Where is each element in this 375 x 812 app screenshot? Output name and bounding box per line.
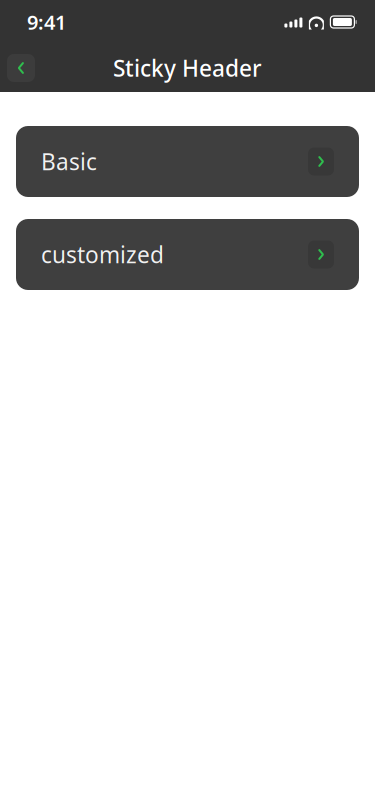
- staticText: 9:41: [27, 9, 66, 35]
- staticText: Sticky Header: [113, 53, 262, 83]
- button[interactable]: Back: [7, 54, 35, 82]
- button[interactable]: customized: [16, 219, 359, 290]
- staticText: Basic: [41, 146, 97, 176]
- button[interactable]: Basic: [16, 126, 359, 197]
- staticText: customized: [41, 239, 164, 269]
